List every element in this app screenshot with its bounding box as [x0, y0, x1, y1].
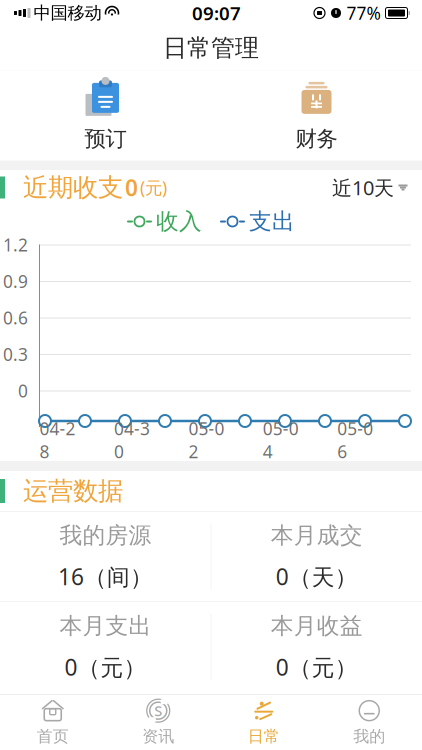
button[interactable]: 本月成交: [211, 511, 422, 601]
button[interactable]: 首页: [0, 695, 105, 750]
button[interactable]: 日常: [211, 695, 316, 750]
staticText: 近期收支: [23, 172, 123, 203]
staticText: 预订: [84, 126, 126, 152]
button[interactable]: 近10天: [332, 168, 422, 207]
staticText: 0: [125, 172, 138, 202]
staticText: 0（天）: [276, 561, 358, 591]
staticText: 0.3: [3, 343, 28, 366]
staticText: 04-30: [114, 417, 150, 463]
button[interactable]: 本月支出: [0, 602, 211, 692]
staticText: 0.9: [3, 270, 28, 293]
staticText: 运营数据: [23, 475, 123, 506]
staticText: 我的: [353, 727, 385, 746]
staticText: 支出: [249, 208, 295, 235]
staticText: 本月成交: [271, 521, 363, 549]
staticText: 05-04: [263, 417, 299, 463]
button[interactable]: 我的: [316, 695, 422, 750]
staticText: 1.2: [3, 233, 28, 256]
staticText: 近10天: [332, 174, 394, 201]
staticText: 本月支出: [59, 612, 151, 640]
staticText: 16（间）: [58, 561, 153, 591]
staticText: 0.6: [3, 306, 28, 329]
staticText: 收入: [156, 208, 202, 235]
staticText: 财务: [295, 126, 337, 152]
staticText: 0（元）: [276, 652, 358, 682]
staticText: 0: [18, 379, 28, 402]
staticText: 09:07: [192, 1, 241, 25]
button[interactable]: 财务: [211, 65, 422, 166]
staticText: 日常管理: [163, 33, 259, 63]
staticText: 05-06: [337, 417, 373, 463]
button[interactable]: 资讯: [105, 695, 211, 750]
staticText: S: [154, 701, 162, 720]
button[interactable]: 我的房源: [0, 511, 211, 601]
staticText: 日常: [248, 727, 280, 746]
button[interactable]: 本月收益: [211, 602, 422, 692]
staticText: 首页: [37, 727, 69, 746]
staticText: 05-02: [188, 417, 224, 463]
staticText: 我的房源: [59, 521, 151, 549]
staticText: 中国移动: [33, 2, 101, 24]
staticText: 04-28: [40, 417, 76, 463]
staticText: (元): [140, 176, 167, 199]
staticText: 本月收益: [271, 612, 363, 640]
button[interactable]: 预订: [0, 65, 211, 166]
staticText: 0（元）: [64, 652, 146, 682]
staticText: 77%: [346, 1, 380, 24]
staticText: 资讯: [142, 727, 174, 746]
